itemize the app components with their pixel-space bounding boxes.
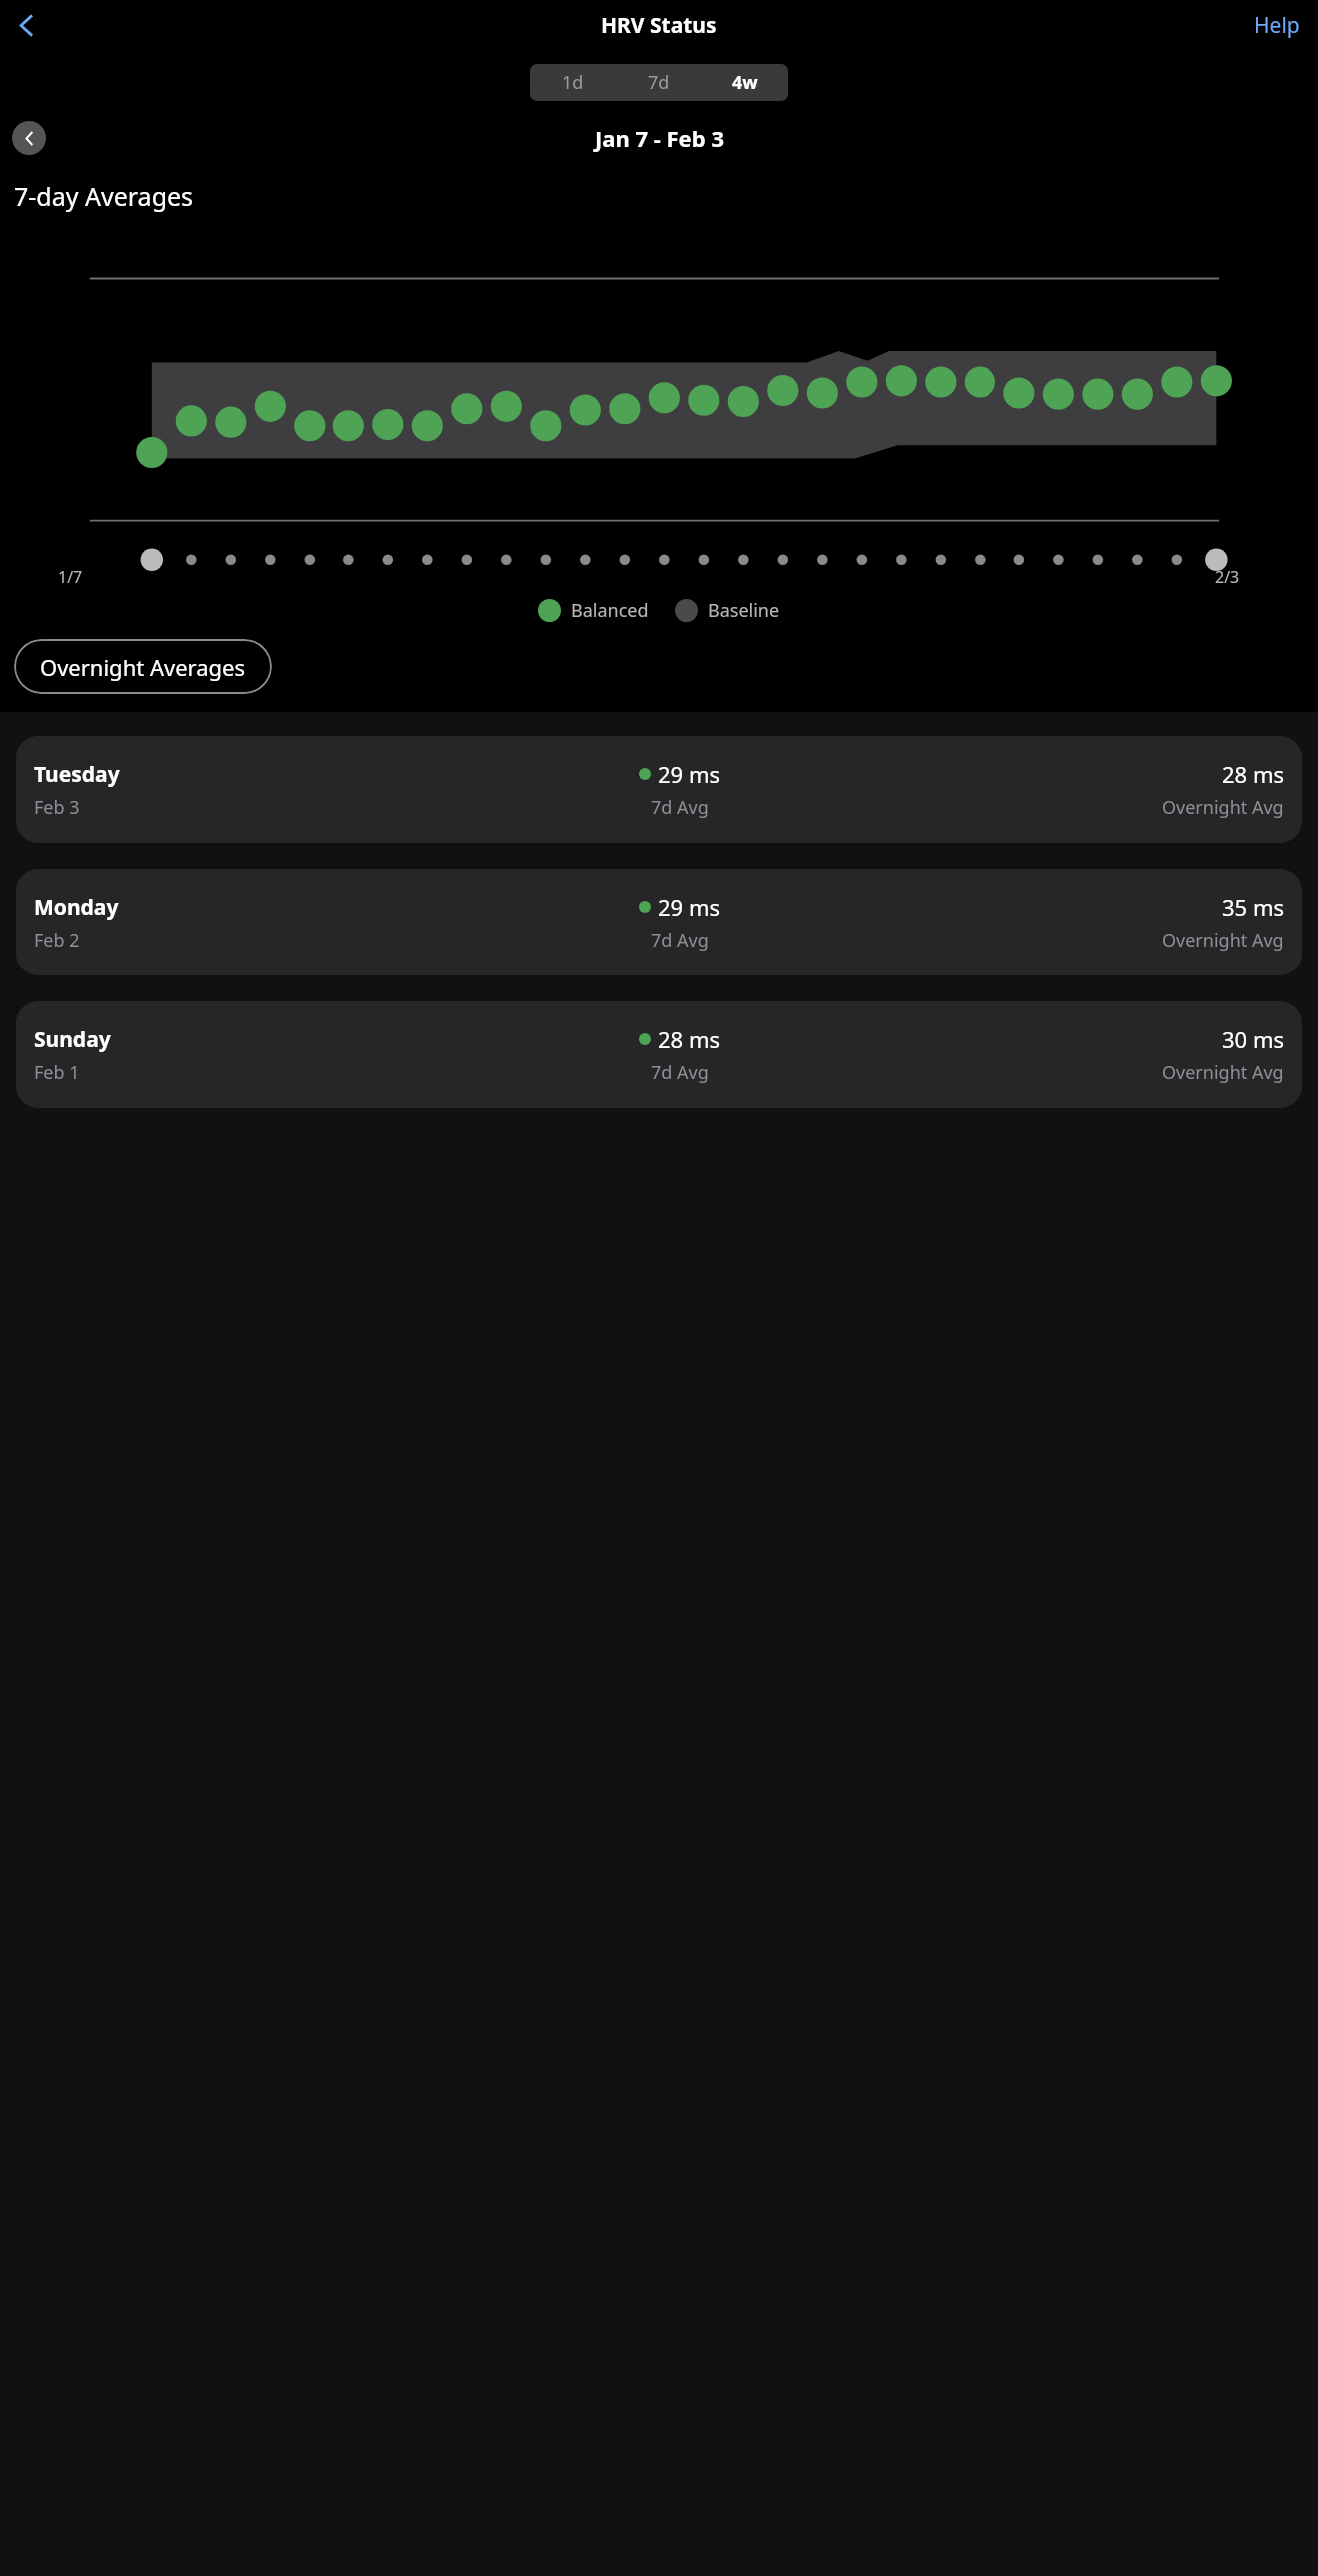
staticText: 7d Avg (651, 1060, 709, 1085)
button[interactable]: Tuesday (16, 736, 1302, 843)
button[interactable]: 4w (702, 64, 788, 101)
staticText: 28 ms (1222, 759, 1284, 789)
staticText: Jan 7 - Feb 3 (595, 123, 724, 153)
staticText: Overnight Avg (1162, 795, 1284, 820)
staticText: Overnight Averages (40, 652, 246, 682)
staticText: 1d (562, 70, 584, 95)
staticText: Monday (34, 893, 119, 922)
staticText: Feb 2 (34, 928, 80, 953)
staticText: 7-day Averages (14, 179, 194, 213)
staticText: Tuesday (34, 760, 120, 789)
staticText: Baseline (708, 598, 780, 623)
button[interactable]: 7d (616, 64, 702, 101)
staticText: Feb 3 (34, 795, 80, 820)
button[interactable]: Overnight Averages (14, 639, 272, 694)
staticText: Sunday (34, 1025, 111, 1054)
button[interactable]: Monday (16, 869, 1302, 975)
button[interactable]: Back (4, 2, 50, 48)
staticText: 28 ms (658, 1024, 720, 1054)
staticText: Overnight Avg (1162, 1060, 1284, 1085)
staticText: 7d Avg (651, 928, 709, 953)
button[interactable]: Help (1248, 3, 1306, 48)
staticText: 35 ms (1222, 892, 1284, 922)
staticText: Feb 1 (34, 1060, 80, 1085)
staticText: 7d Avg (651, 795, 709, 820)
staticText: 7d (648, 70, 670, 95)
staticText: Overnight Avg (1162, 928, 1284, 953)
staticText: 4w (732, 70, 758, 95)
staticText: 2/3 (1215, 566, 1240, 588)
button[interactable]: Previous period (12, 121, 46, 155)
staticText: 30 ms (1222, 1024, 1284, 1054)
button[interactable]: Sunday (16, 1001, 1302, 1108)
staticText: HRV Status (601, 11, 717, 40)
staticText: 29 ms (658, 892, 720, 922)
staticText: 29 ms (658, 759, 720, 789)
staticText: Balanced (571, 598, 649, 623)
staticText: Help (1254, 11, 1300, 40)
staticText: 1/7 (58, 566, 83, 588)
button[interactable]: 1d (530, 64, 616, 101)
